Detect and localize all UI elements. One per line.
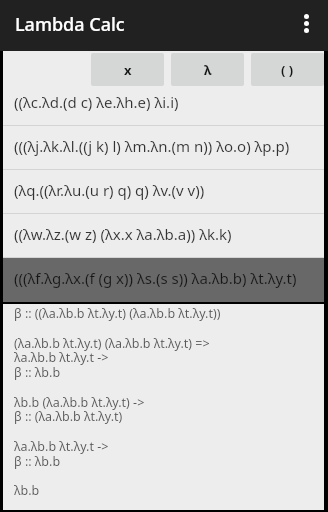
- staticText: (((λf.λg.λx.(f (g x)) λs.(s s)) λa.λb.b)…: [14, 268, 297, 288]
- staticText: ((λc.λd.(d c) λe.λh.e) λi.i): [14, 92, 179, 112]
- staticText: (((λj.λk.λl.((j k) l) λm.λn.(m n)) λo.o)…: [14, 136, 290, 156]
- staticText: (λq.((λr.λu.(u r) q) q) λv.(v v)): [14, 180, 205, 200]
- staticText: β :: (λa.λb.b λt.λy.t): [14, 408, 123, 425]
- staticText: (λa.λb.b λt.λy.t) (λa.λb.b λt.λy.t) =>: [14, 335, 210, 352]
- staticText: β :: λb.b: [14, 453, 61, 470]
- staticText: β :: λb.b: [14, 364, 61, 381]
- staticText: x: [124, 61, 132, 79]
- button[interactable]: ((λc.λd.(d c) λe.λh.e) λi.i): [3, 86, 324, 126]
- staticText: β :: ((λa.λb.b λt.λy.t) (λa.λb.b λt.λy.t…: [14, 305, 221, 322]
- button[interactable]: More options: [284, 0, 328, 51]
- button[interactable]: λ: [171, 53, 244, 86]
- button[interactable]: x: [91, 53, 164, 86]
- button[interactable]: ( ): [251, 53, 324, 86]
- staticText: ((λw.λz.(w z) (λx.x λa.λb.a)) λk.k): [14, 224, 232, 244]
- staticText: λb.b (λa.λb.b λt.λy.t) ->: [14, 394, 145, 411]
- staticText: ( ): [281, 61, 294, 79]
- button[interactable]: (((λf.λg.λx.(f (g x)) λs.(s s)) λa.λb.b)…: [3, 258, 324, 302]
- staticText: λa.λb.b λt.λy.t ->: [14, 438, 109, 455]
- staticText: Lambda Calc: [15, 12, 125, 37]
- staticText: λb.b: [14, 482, 40, 499]
- staticText: λa.λb.b λt.λy.t ->: [14, 349, 109, 366]
- button[interactable]: (λq.((λr.λu.(u r) q) q) λv.(v v)): [3, 170, 324, 214]
- button[interactable]: ((λw.λz.(w z) (λx.x λa.λb.a)) λk.k): [3, 214, 324, 258]
- staticText: λ: [204, 61, 212, 79]
- button[interactable]: (((λj.λk.λl.((j k) l) λm.λn.(m n)) λo.o)…: [3, 126, 324, 170]
